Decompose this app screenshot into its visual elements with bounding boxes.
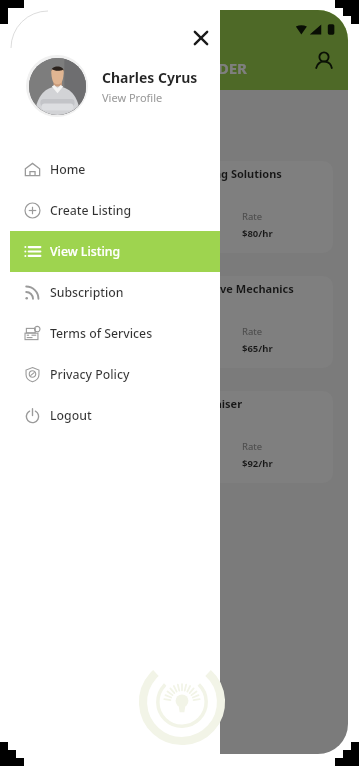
button[interactable]: Logout <box>0 395 220 436</box>
button[interactable]: Close drawer <box>190 27 212 49</box>
staticText: ORDER <box>196 58 247 78</box>
staticText: Home <box>50 161 86 178</box>
staticText: $65/hr <box>242 342 273 355</box>
staticText: $92/hr <box>242 457 273 470</box>
button[interactable]: View Listing <box>10 231 220 272</box>
button[interactable]: Cleaning Solutions <box>129 161 333 253</box>
staticText: Create Listing <box>50 202 132 219</box>
staticText: Automotive Mechanics <box>168 281 294 296</box>
staticText: Cleaning Solutions <box>180 166 282 181</box>
button[interactable]: Charles Cyrus <box>26 55 220 117</box>
staticText: Rate <box>242 325 263 338</box>
button[interactable]: Create Listing <box>0 190 220 231</box>
staticText: Terms of Services <box>50 325 153 342</box>
button[interactable]: Privacy Policy <box>0 354 220 395</box>
button[interactable]: Home <box>0 149 220 190</box>
staticText: Logout <box>50 407 92 424</box>
button[interactable]: Appraiser <box>129 391 333 483</box>
staticText: View Listing <box>50 243 121 260</box>
staticText: View Profile <box>102 90 163 105</box>
button[interactable]: Automotive Mechanics <box>129 276 333 368</box>
staticText: Privacy Policy <box>50 366 130 383</box>
staticText: Charles Cyrus <box>102 68 198 87</box>
staticText: Rate <box>242 440 263 453</box>
button[interactable]: Subscription <box>0 272 220 313</box>
staticText: Appraiser <box>189 396 243 411</box>
staticText: Rate <box>242 210 263 223</box>
button[interactable]: Terms of Services <box>0 313 220 354</box>
staticText: $80/hr <box>242 227 273 240</box>
staticText: Subscription <box>50 284 124 301</box>
button[interactable]: Profile <box>313 50 335 72</box>
